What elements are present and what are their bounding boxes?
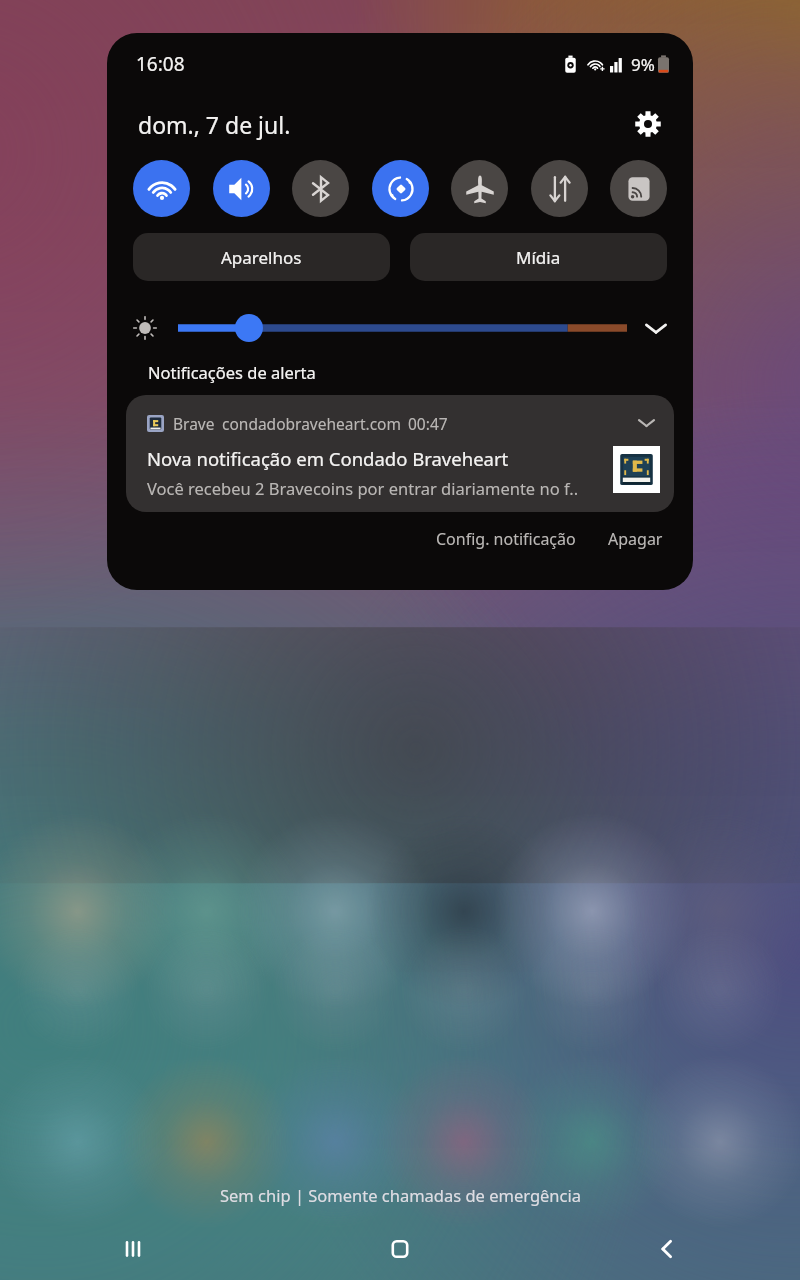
- button[interactable]: Aparelhos: [133, 233, 390, 281]
- button[interactable]: Expandir: [639, 311, 673, 345]
- button[interactable]: Wi-Fi: [133, 160, 190, 217]
- staticText: 16:08: [136, 51, 185, 77]
- staticText: Você recebeu 2 Bravecoins por entrar dia…: [147, 477, 579, 499]
- staticText: 9%: [631, 53, 655, 76]
- button[interactable]: Brave: [126, 395, 674, 512]
- staticText: Mídia: [516, 246, 561, 269]
- button[interactable]: Dados móveis: [531, 160, 588, 217]
- button[interactable]: Smart View: [610, 160, 667, 217]
- button[interactable]: Expandir notificação: [634, 411, 658, 435]
- button[interactable]: Brilho: [178, 308, 627, 348]
- button[interactable]: Som: [213, 160, 270, 217]
- staticText: 00:47: [408, 413, 448, 434]
- staticText: dom., 7 de jul.: [138, 109, 291, 140]
- staticText: Notificações de alerta: [148, 361, 316, 383]
- button[interactable]: Config. notificação: [430, 522, 582, 556]
- staticText: Config. notificação: [436, 528, 576, 550]
- button[interactable]: Rotação automática: [372, 160, 429, 217]
- staticText: condadobraveheart.com: [222, 413, 401, 434]
- staticText: Aparelhos: [221, 246, 302, 269]
- staticText: Apagar: [608, 528, 663, 550]
- button[interactable]: Modo avião: [451, 160, 508, 217]
- staticText: Nova notificação em Condado Braveheart: [147, 446, 509, 471]
- staticText: Sem chip | Somente chamadas de emergênci…: [220, 1184, 581, 1206]
- button[interactable]: Mídia: [410, 233, 667, 281]
- button[interactable]: Bluetooth: [292, 160, 349, 217]
- button[interactable]: Início: [266, 1218, 533, 1280]
- button[interactable]: Apagar: [602, 522, 669, 556]
- button[interactable]: Recentes: [0, 1218, 266, 1280]
- staticText: Brave: [173, 413, 215, 434]
- button[interactable]: Configurações: [631, 107, 665, 141]
- button[interactable]: Voltar: [533, 1218, 800, 1280]
